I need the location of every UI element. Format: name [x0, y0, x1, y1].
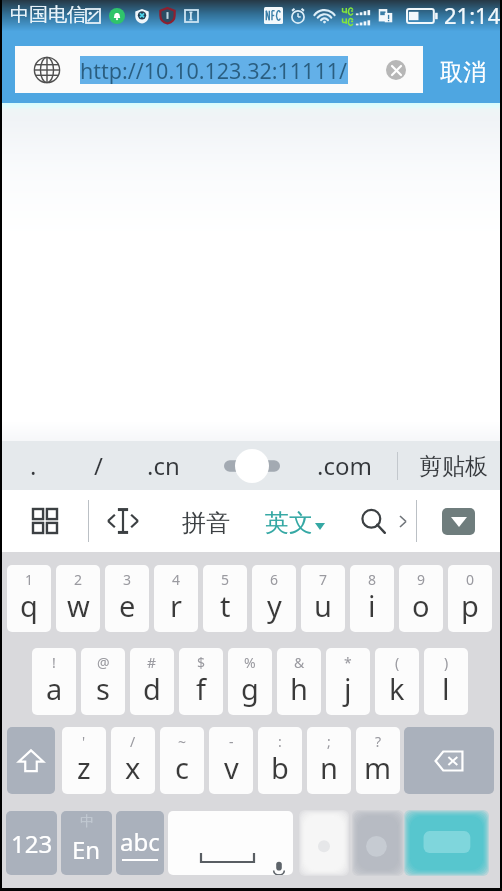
button[interactable]: ': [62, 727, 106, 794]
staticText: q: [20, 586, 38, 625]
button[interactable]: /: [111, 727, 155, 794]
button[interactable]: 3: [105, 565, 149, 632]
staticText: 中: [80, 813, 94, 831]
staticText: v: [224, 748, 239, 787]
staticText: 7: [319, 570, 328, 589]
staticText: /: [130, 732, 136, 751]
staticText: o: [412, 586, 430, 625]
button[interactable]: 剪贴板: [405, 441, 502, 490]
button[interactable]: 8: [350, 565, 394, 632]
staticText: z: [77, 748, 91, 787]
button[interactable]: Shift: [7, 727, 55, 794]
button[interactable]: Keyboard layouts: [9, 490, 81, 552]
staticText: 8: [368, 570, 377, 589]
button[interactable]: Hide keyboard: [428, 490, 488, 552]
button[interactable]: 1: [7, 565, 51, 632]
staticText: k: [389, 669, 405, 708]
button[interactable]: @: [81, 648, 125, 715]
staticText: *: [344, 653, 352, 672]
staticText: ;: [327, 732, 331, 751]
staticText: 3: [123, 570, 132, 589]
button[interactable]: 6: [252, 565, 296, 632]
staticText: ?: [375, 732, 382, 751]
other: Site info: [33, 56, 61, 84]
button[interactable]: Go: [404, 810, 489, 876]
staticText: &: [294, 653, 305, 672]
button[interactable]: #: [130, 648, 174, 715]
staticText: 6: [270, 570, 279, 589]
staticText: 拼音: [182, 508, 230, 538]
staticText: $: [197, 653, 206, 672]
staticText: h: [290, 669, 308, 708]
button[interactable]: Emoji: [352, 810, 404, 876]
button[interactable]: &: [277, 648, 321, 715]
button[interactable]: Space: [168, 811, 293, 875]
staticText: 取消: [440, 58, 486, 87]
button[interactable]: ?: [356, 727, 400, 794]
button[interactable]: Clear: [386, 60, 406, 80]
button[interactable]: .com: [308, 441, 380, 490]
button[interactable]: 英文: [265, 490, 337, 552]
staticText: f: [196, 669, 206, 708]
staticText: #: [147, 653, 157, 672]
button[interactable]: 拼音: [170, 490, 242, 552]
staticText: 5: [221, 570, 230, 589]
staticText: j: [344, 669, 352, 708]
button[interactable]: .cn: [127, 441, 199, 490]
button[interactable]: 123: [6, 811, 57, 875]
button[interactable]: Comma: [299, 810, 349, 876]
staticText: u: [314, 586, 332, 625]
button[interactable]: 中: [61, 811, 112, 875]
button[interactable]: 5: [203, 565, 247, 632]
button[interactable]: $: [179, 648, 223, 715]
staticText: l: [442, 669, 450, 708]
staticText: m: [364, 748, 392, 787]
staticText: 123: [11, 827, 53, 860]
button[interactable]: Search: [350, 490, 396, 552]
button[interactable]: Move cursor: [95, 490, 151, 552]
button[interactable]: (: [375, 648, 419, 715]
button[interactable]: -: [209, 727, 253, 794]
button[interactable]: %: [228, 648, 272, 715]
button[interactable]: !: [32, 648, 76, 715]
button[interactable]: /: [62, 441, 134, 490]
staticText: w: [67, 586, 90, 625]
staticText: g: [241, 669, 259, 708]
button[interactable]: Drag handle: [215, 441, 289, 490]
staticText: 9: [417, 570, 426, 589]
staticText: En: [72, 833, 101, 866]
staticText: .com: [317, 449, 372, 482]
button[interactable]: 7: [301, 565, 345, 632]
button[interactable]: abc: [116, 811, 164, 875]
button[interactable]: ~: [160, 727, 204, 794]
button[interactable]: 9: [399, 565, 443, 632]
button[interactable]: *: [326, 648, 370, 715]
button[interactable]: 取消: [423, 31, 502, 103]
staticText: n: [320, 748, 338, 787]
staticText: :: [278, 732, 282, 751]
staticText: 4: [172, 570, 181, 589]
button[interactable]: ): [424, 648, 468, 715]
button[interactable]: 0: [448, 565, 492, 632]
button[interactable]: .: [0, 441, 69, 490]
button[interactable]: ;: [307, 727, 351, 794]
staticText: ': [82, 732, 86, 751]
staticText: .cn: [147, 449, 180, 482]
staticText: %: [244, 653, 256, 672]
staticText: -: [229, 732, 234, 751]
staticText: x: [125, 748, 141, 787]
button[interactable]: 4: [154, 565, 198, 632]
button[interactable]: 2: [56, 565, 100, 632]
staticText: 1: [25, 570, 34, 589]
staticText: ): [444, 653, 449, 672]
staticText: e: [119, 586, 136, 625]
staticText: i: [368, 586, 376, 625]
button[interactable]: Site info: [15, 46, 423, 93]
button[interactable]: Backspace: [404, 727, 494, 794]
staticText: y: [267, 586, 282, 625]
staticText: @: [97, 653, 110, 672]
staticText: 21:14: [444, 0, 501, 30]
button[interactable]: :: [258, 727, 302, 794]
staticText: s: [96, 669, 110, 708]
staticText: .: [30, 449, 37, 482]
